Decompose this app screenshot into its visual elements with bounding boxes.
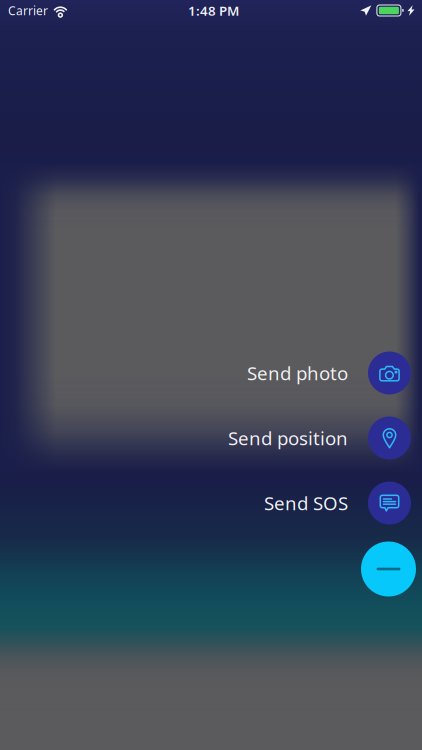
staticText: 1:48 PM	[188, 2, 239, 19]
button[interactable]: Close actions menu	[361, 541, 422, 596]
staticText: Carrier	[8, 2, 48, 18]
button[interactable]: Send position	[228, 416, 422, 459]
staticText: Send photo	[247, 361, 348, 385]
button[interactable]: Send SOS	[264, 481, 422, 524]
staticText: Send position	[228, 426, 348, 450]
staticText: Send SOS	[264, 491, 348, 515]
button[interactable]: Send photo	[247, 351, 422, 394]
